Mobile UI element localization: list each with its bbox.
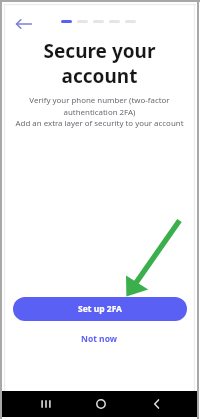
button[interactable]: Back	[141, 391, 170, 417]
staticText: Set up 2FA	[78, 303, 123, 315]
button[interactable]: Set up 2FA	[13, 297, 187, 321]
button[interactable]: Not now	[75, 331, 124, 347]
staticText: Secure your account	[28, 38, 171, 89]
button[interactable]: Recent apps	[31, 391, 60, 417]
button[interactable]: Home	[86, 391, 115, 417]
staticText: Not now	[81, 333, 118, 345]
staticText: Verify your phone number (two-factor aut…	[3, 95, 196, 128]
button[interactable]: Back	[14, 14, 34, 34]
